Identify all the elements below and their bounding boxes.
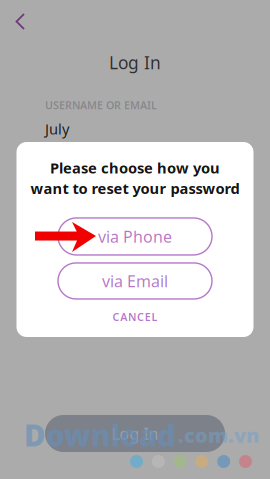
staticText: want to reset your password xyxy=(30,178,239,198)
staticText: Log In xyxy=(109,51,161,74)
staticText: Log In xyxy=(111,423,158,444)
staticText: via Phone xyxy=(98,226,172,247)
button[interactable]: Back xyxy=(9,8,35,34)
staticText: .com xyxy=(178,422,228,448)
button[interactable]: Log In xyxy=(45,415,225,452)
staticText: Download xyxy=(24,415,176,454)
staticText: .vn xyxy=(228,422,259,448)
staticText: July xyxy=(45,119,69,139)
button[interactable]: via Phone xyxy=(58,218,212,255)
staticText: CANCEL xyxy=(112,310,157,324)
button[interactable]: via Email xyxy=(58,263,212,299)
staticText: USERNAME OR EMAIL xyxy=(45,98,157,112)
staticText: Please choose how you xyxy=(50,158,220,177)
staticText: via Email xyxy=(102,270,168,291)
button[interactable]: CANCEL xyxy=(80,304,190,330)
